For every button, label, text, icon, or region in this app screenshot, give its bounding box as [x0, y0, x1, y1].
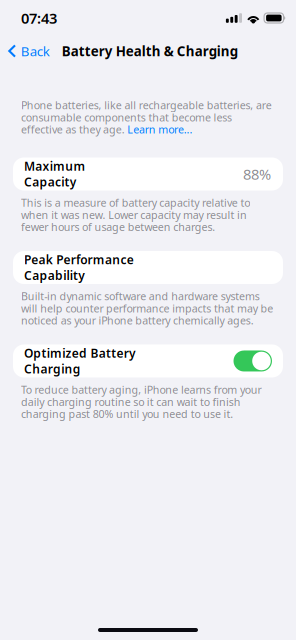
staticText: Peak Performance Capability — [24, 252, 134, 283]
staticText: Battery Health & Charging — [62, 42, 238, 60]
staticText: Optimized Battery Charging — [24, 345, 136, 377]
staticText: 88% — [243, 164, 271, 184]
staticText: Back — [21, 42, 50, 60]
button[interactable]: Optimized Battery Charging — [13, 344, 283, 377]
button[interactable]: Peak Performance Capability — [13, 251, 283, 284]
button[interactable]: Maximum Capacity — [13, 157, 283, 190]
staticText: Maximum Capacity — [24, 158, 85, 190]
staticText: 07:43 — [21, 8, 57, 28]
staticText: This is a measure of battery capacity re… — [21, 195, 250, 234]
staticText: Phone batteries, like all rechargeable b… — [21, 98, 272, 136]
button[interactable]: Back — [0, 36, 56, 66]
staticText: Built-in dynamic software and hardware s… — [21, 289, 273, 327]
staticText: To reduce battery aging, iPhone learns f… — [21, 382, 261, 421]
